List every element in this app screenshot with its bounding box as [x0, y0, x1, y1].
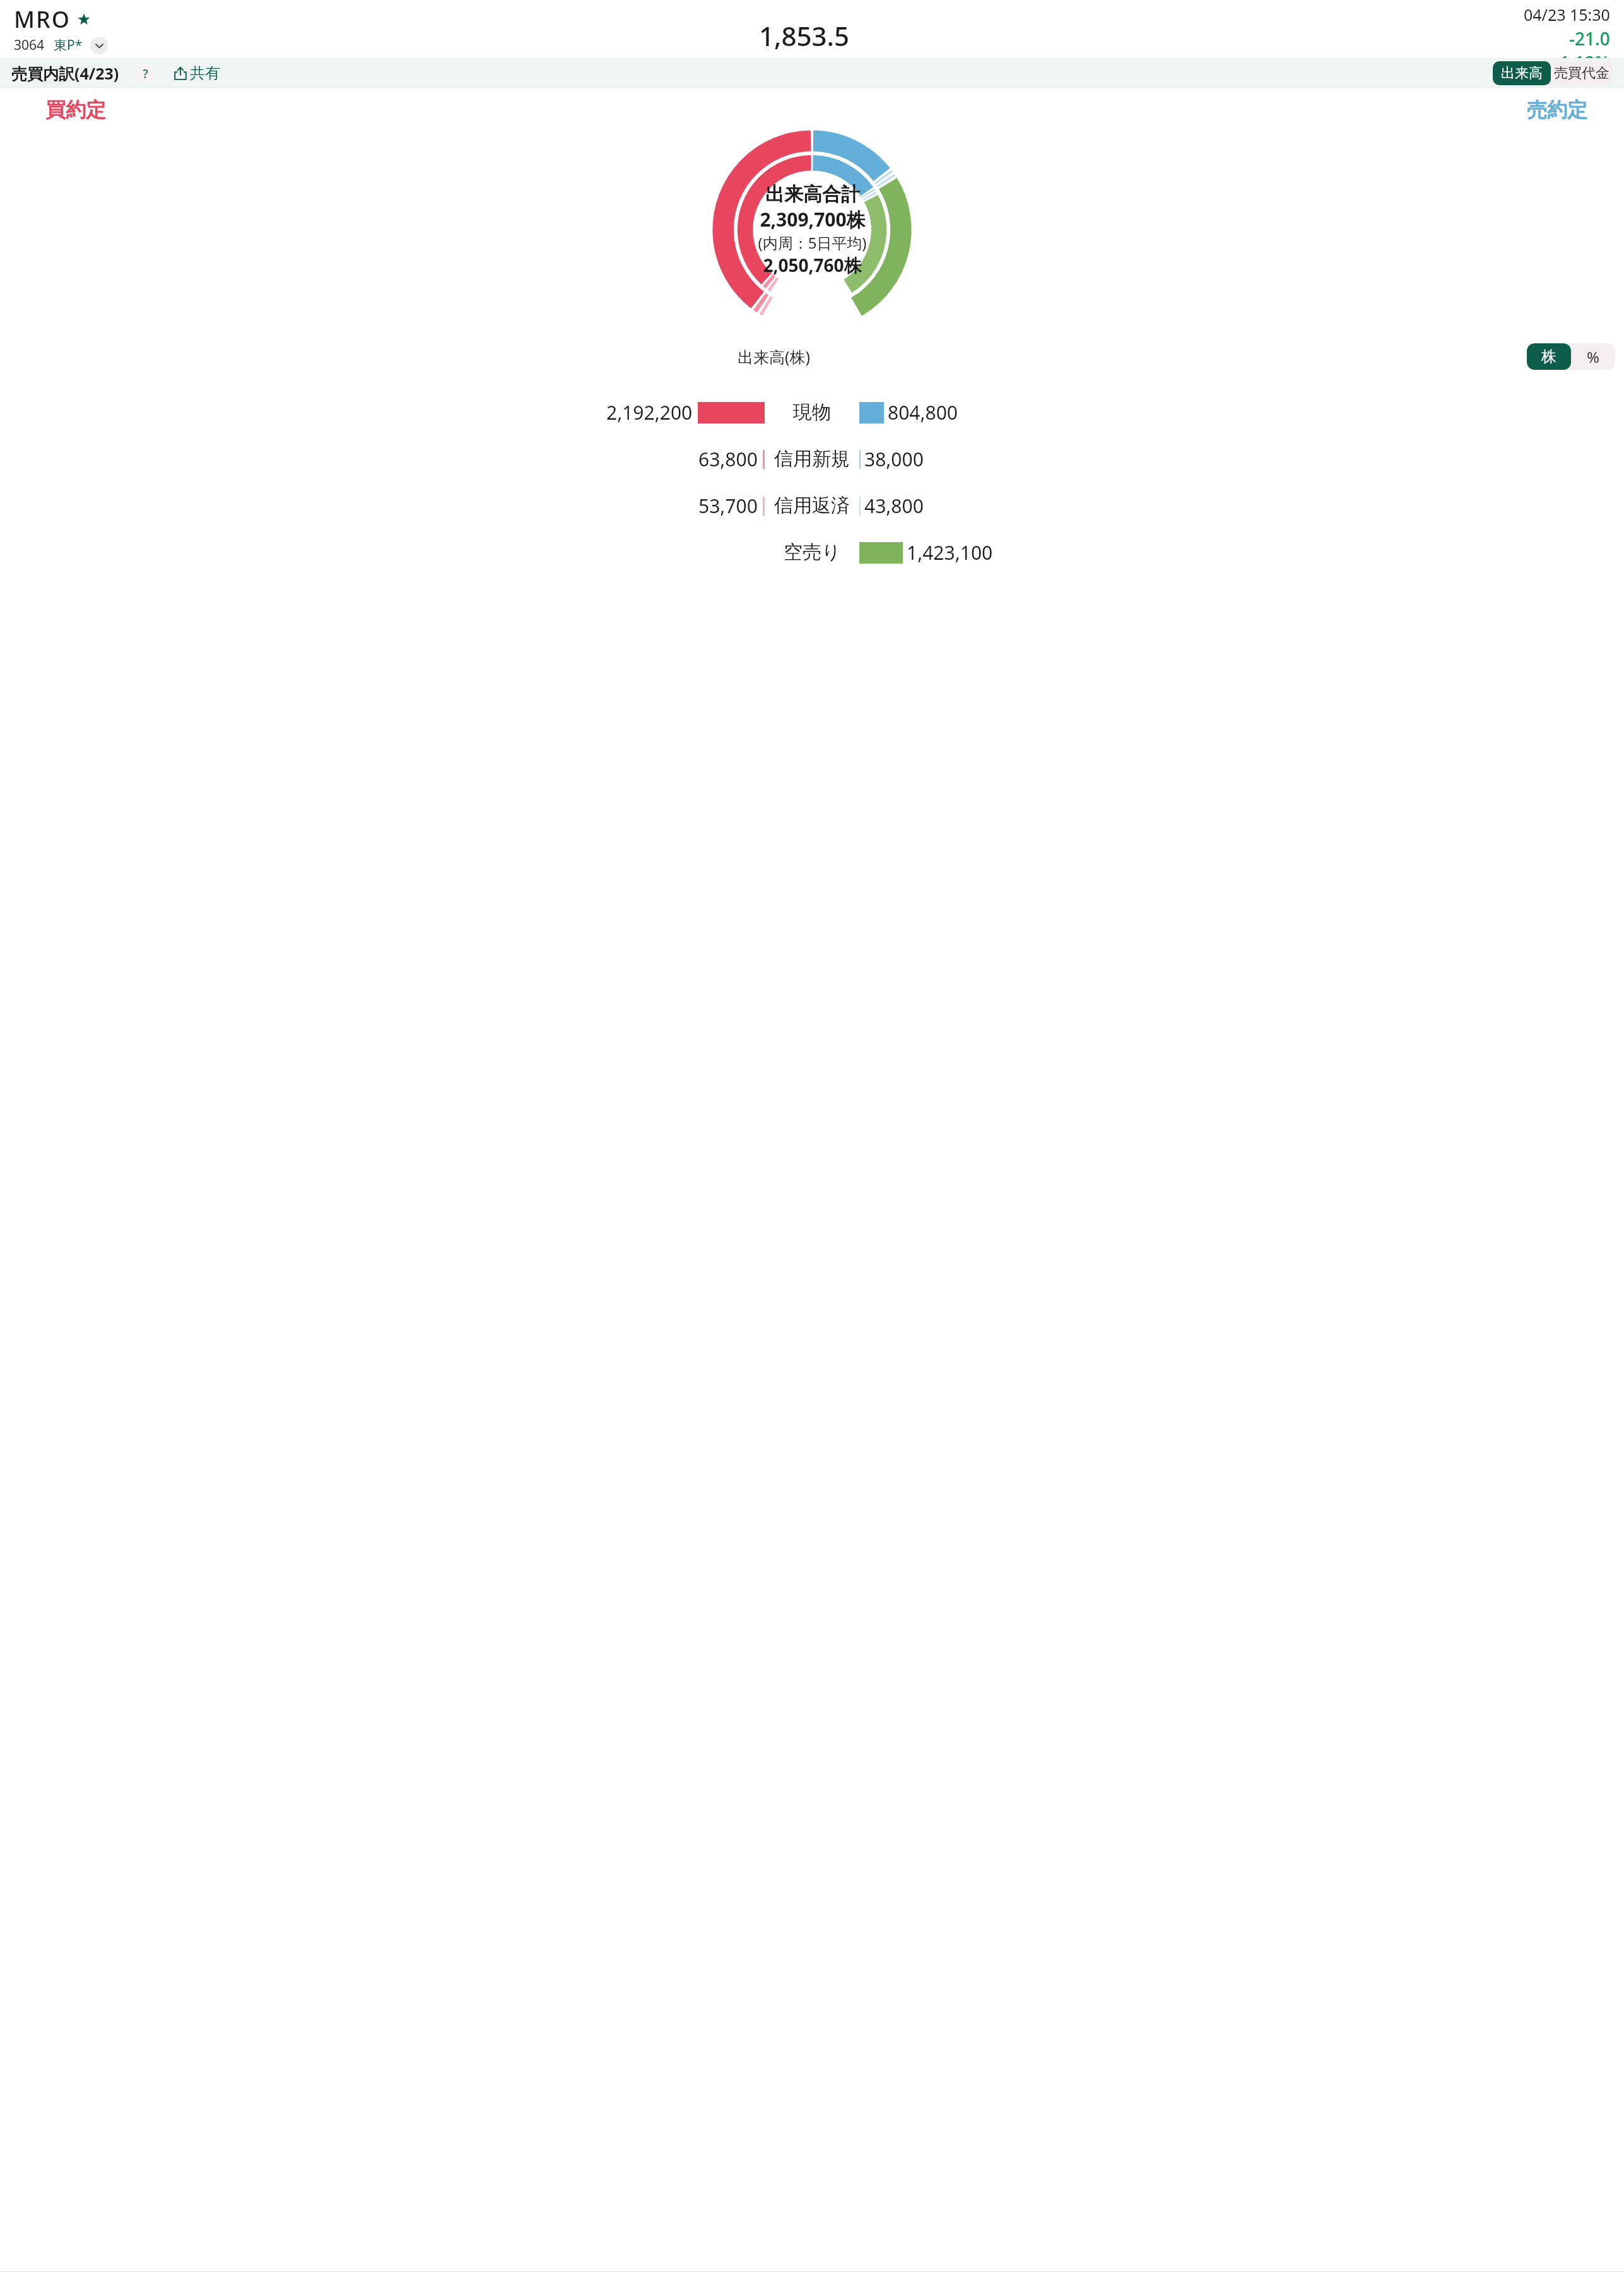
button[interactable]: 出来高	[1493, 61, 1551, 85]
staticText: 1,853.5	[759, 18, 850, 54]
staticText: 53,700	[698, 493, 758, 519]
staticText: 63,800	[698, 446, 758, 472]
staticText: 出来高合計	[765, 182, 860, 206]
button[interactable]: 空売り	[0, 529, 1624, 576]
staticText: 共有	[190, 64, 220, 83]
staticText: 2,309,700株	[760, 206, 866, 232]
staticText: ?	[143, 65, 148, 82]
staticText: 3064	[14, 36, 45, 54]
staticText: 2,050,760株	[763, 253, 862, 277]
staticText: 804,800	[888, 399, 958, 425]
staticText: 現物	[793, 400, 831, 424]
staticText: 信用新規	[774, 447, 850, 471]
staticText: %	[1587, 346, 1599, 367]
button[interactable]: 63,800	[0, 435, 1624, 482]
button[interactable]: Help	[136, 64, 155, 83]
staticText: 38,000	[864, 446, 924, 472]
staticText: 株	[1541, 347, 1556, 366]
button[interactable]: 共有	[171, 61, 223, 85]
button[interactable]: 2,192,200	[0, 389, 1624, 435]
button[interactable]: 株	[1527, 343, 1571, 370]
staticText: 売買代金	[1554, 64, 1609, 82]
staticText: 1,423,100	[907, 540, 993, 565]
staticText: -1.12%	[1554, 50, 1610, 58]
staticText: 空売り	[784, 540, 841, 564]
staticText: 2,192,200	[606, 399, 693, 425]
staticText: 売約定	[1527, 97, 1587, 122]
staticText: 43,800	[864, 493, 924, 519]
staticText: 売買内訳(4/23)	[11, 62, 119, 84]
staticText: (内周：5日平均)	[758, 232, 867, 253]
button[interactable]: %	[1571, 343, 1615, 370]
button[interactable]: Expand	[90, 37, 108, 54]
staticText: 東P*	[54, 36, 83, 54]
staticText: 04/23 15:30	[1524, 4, 1610, 25]
staticText: 買約定	[45, 97, 106, 122]
staticText: 出来高	[1501, 64, 1543, 82]
staticText: -21.0	[1569, 27, 1610, 50]
button[interactable]: 53,700	[0, 482, 1624, 529]
staticText: 出来高(株)	[738, 346, 811, 367]
button[interactable]: 売買代金	[1551, 61, 1613, 85]
staticText: 信用返済	[774, 494, 850, 518]
staticText: MRO	[14, 4, 71, 35]
